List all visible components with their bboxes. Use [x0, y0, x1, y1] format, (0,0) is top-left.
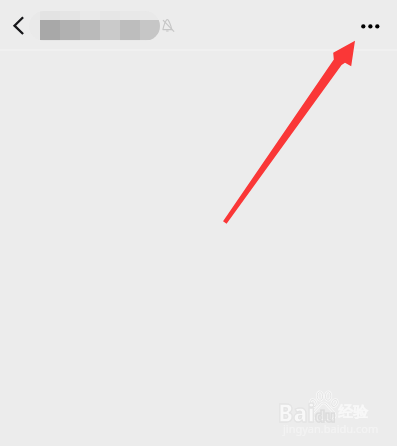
button[interactable]: Mute notifications [160, 17, 178, 35]
staticText: jingyan.baidu.com [283, 421, 379, 436]
button[interactable]: Back [6, 12, 32, 38]
staticText: Bai [278, 395, 315, 430]
staticText: Bai [278, 395, 315, 430]
staticText: du [315, 405, 336, 426]
button[interactable] [29, 11, 160, 41]
staticText: 经验 [338, 403, 368, 422]
button[interactable]: More options [352, 14, 388, 39]
